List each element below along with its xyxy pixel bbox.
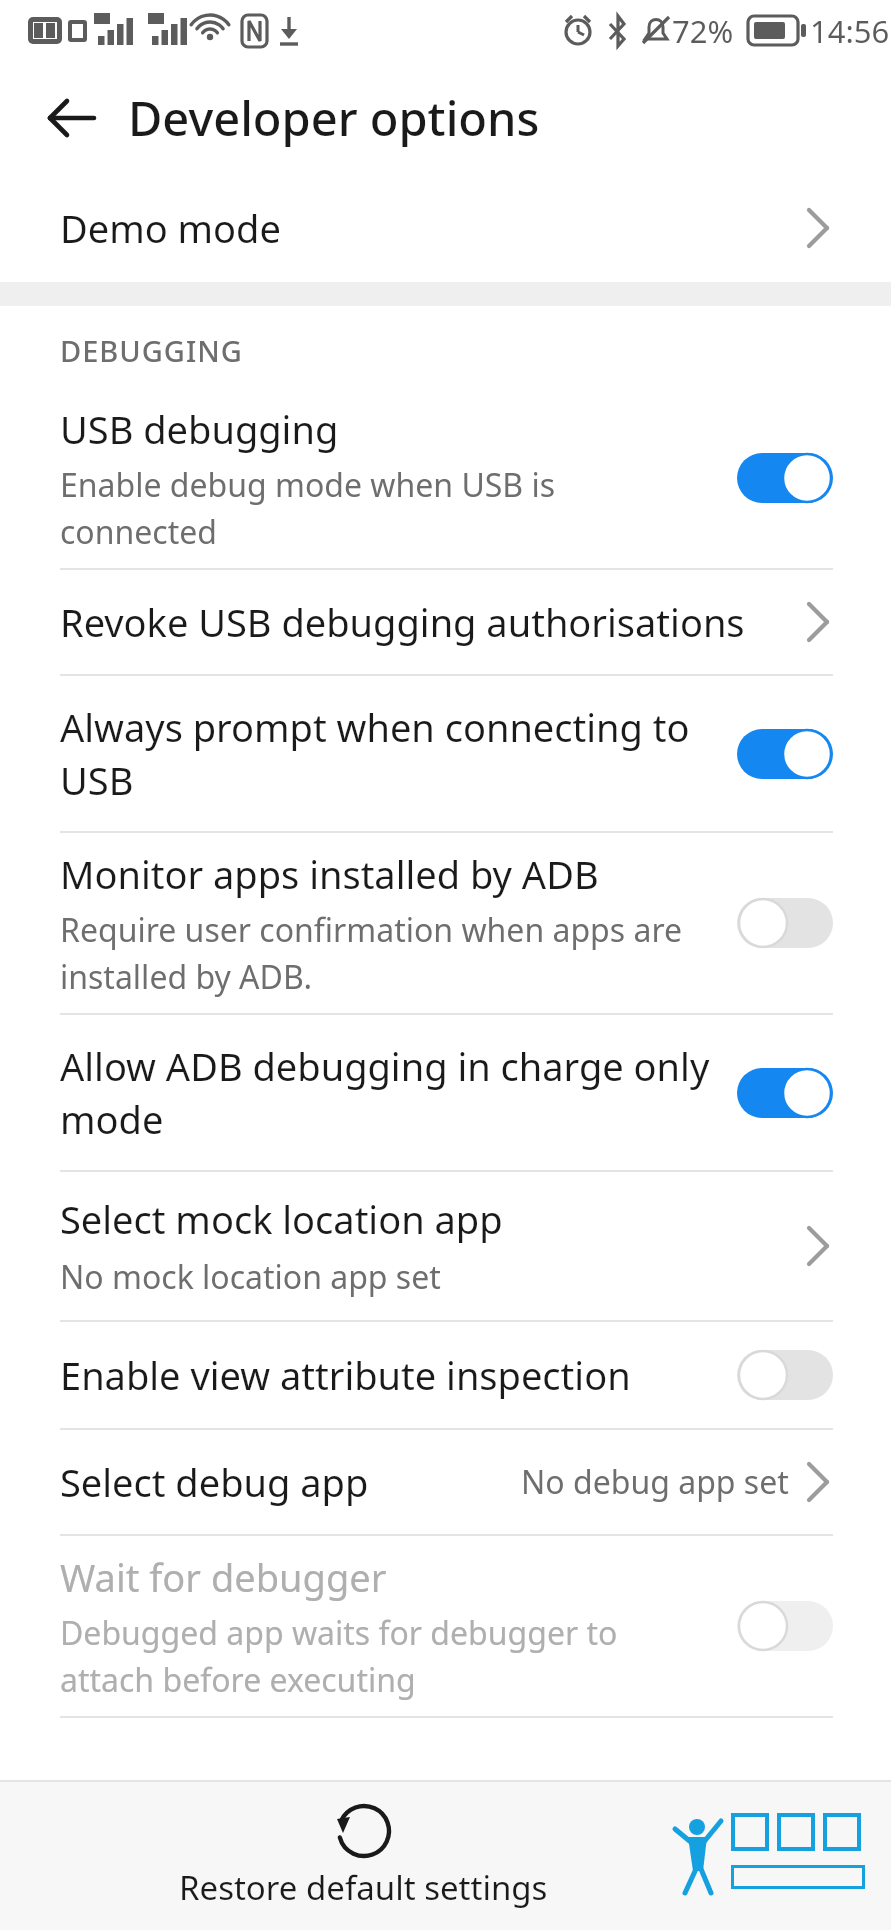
button[interactable]: On xyxy=(737,728,833,780)
button[interactable]: On xyxy=(737,452,833,504)
button[interactable]: Enable view attribute inspection xyxy=(0,1322,891,1428)
button[interactable]: Always prompt when connecting to USB xyxy=(0,676,891,831)
button[interactable]: Off xyxy=(737,1600,833,1652)
button[interactable]: On xyxy=(737,1067,833,1119)
button[interactable]: Off xyxy=(737,1349,833,1401)
staticText: Select debug app xyxy=(60,1456,369,1508)
button[interactable]: Select mock location app xyxy=(0,1172,891,1320)
button[interactable]: Restore default settings xyxy=(149,1795,578,1916)
staticText: Select mock location app xyxy=(60,1193,503,1245)
staticText: Demo mode xyxy=(60,202,281,254)
staticText: Allow ADB debugging in charge only mode xyxy=(60,1040,710,1146)
staticText: No debug app set xyxy=(521,1460,789,1504)
button[interactable]: Off xyxy=(737,897,833,949)
staticText: Revoke USB debugging authorisations xyxy=(60,596,745,648)
button[interactable]: Allow ADB debugging in charge only mode xyxy=(0,1015,891,1170)
staticText: Require user confirmation when apps are … xyxy=(60,908,683,998)
staticText: Enable debug mode when USB is connected xyxy=(60,463,556,553)
button[interactable]: Revoke USB debugging authorisations xyxy=(0,570,891,674)
staticText: USB debugging xyxy=(60,403,339,455)
staticText: Developer options xyxy=(128,86,540,150)
staticText: Monitor apps installed by ADB xyxy=(60,848,599,900)
staticText: 14:56 xyxy=(810,10,890,52)
staticText: Wait for debugger xyxy=(60,1551,387,1603)
staticText: 72% xyxy=(672,10,734,52)
staticText: No mock location app set xyxy=(60,1255,441,1299)
staticText: Enable view attribute inspection xyxy=(60,1349,631,1401)
button[interactable]: Wait for debugger xyxy=(0,1536,891,1716)
staticText: Debugged app waits for debugger to attac… xyxy=(60,1611,618,1701)
button[interactable]: Back xyxy=(32,78,112,158)
button[interactable]: USB debugging xyxy=(0,388,891,568)
button[interactable]: Monitor apps installed by ADB xyxy=(0,833,891,1013)
staticText: DEBUGGING xyxy=(60,331,243,370)
staticText: Restore default settings xyxy=(179,1865,548,1910)
staticText: Always prompt when connecting to USB xyxy=(60,701,690,807)
button[interactable]: Select debug app xyxy=(0,1430,891,1534)
button[interactable]: Demo mode xyxy=(0,174,891,282)
